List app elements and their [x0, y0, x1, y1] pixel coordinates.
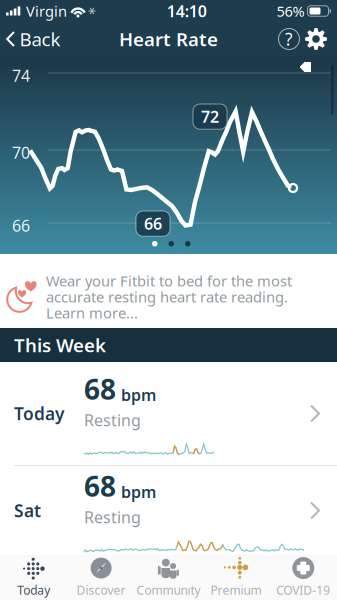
staticText: Discover — [77, 582, 126, 598]
button[interactable]: Settings — [302, 28, 330, 50]
button[interactable]: Help — [276, 26, 302, 52]
staticText: Resting — [84, 409, 141, 431]
staticText: accurate resting heart rate reading. — [46, 287, 288, 306]
staticText: bpm — [121, 384, 156, 405]
staticText: 14:10 — [167, 0, 207, 22]
staticText: Sat — [14, 499, 41, 522]
staticText: Back — [19, 27, 60, 51]
staticText: Today — [14, 402, 64, 425]
staticText: This Week — [14, 333, 106, 357]
button[interactable]: Back — [0, 22, 66, 56]
staticText: Wear your Fitbit to bed for the most — [46, 271, 292, 290]
button[interactable]: Today — [0, 552, 67, 600]
button[interactable]: Sat — [0, 466, 337, 555]
staticText: Premium — [210, 582, 261, 598]
staticText: Virgin — [26, 1, 67, 21]
staticText: 74 — [12, 65, 30, 86]
staticText: 72 — [201, 106, 219, 127]
staticText: Learn more... — [46, 303, 138, 322]
staticText: Heart Rate — [119, 27, 218, 51]
staticText: ? — [285, 27, 293, 50]
button[interactable]: Community — [135, 552, 202, 600]
staticText: 66 — [12, 215, 30, 236]
staticText: Resting — [84, 506, 141, 528]
staticText: Today — [17, 582, 50, 598]
button[interactable]: Discover — [67, 552, 135, 600]
button[interactable]: Today — [0, 362, 337, 465]
button[interactable]: COVID-19 — [270, 552, 337, 600]
staticText: 66 — [144, 213, 162, 234]
staticText: 68 — [84, 467, 116, 504]
staticText: COVID-19 — [276, 582, 330, 598]
staticText: Community — [136, 582, 200, 598]
button[interactable]: Premium — [202, 552, 270, 600]
staticText: 56% — [276, 1, 304, 21]
staticText: 68 — [84, 370, 116, 407]
button[interactable]: Wear your Fitbit to bed for the most — [0, 254, 337, 328]
staticText: bpm — [121, 481, 156, 502]
staticText: 70 — [12, 142, 30, 163]
